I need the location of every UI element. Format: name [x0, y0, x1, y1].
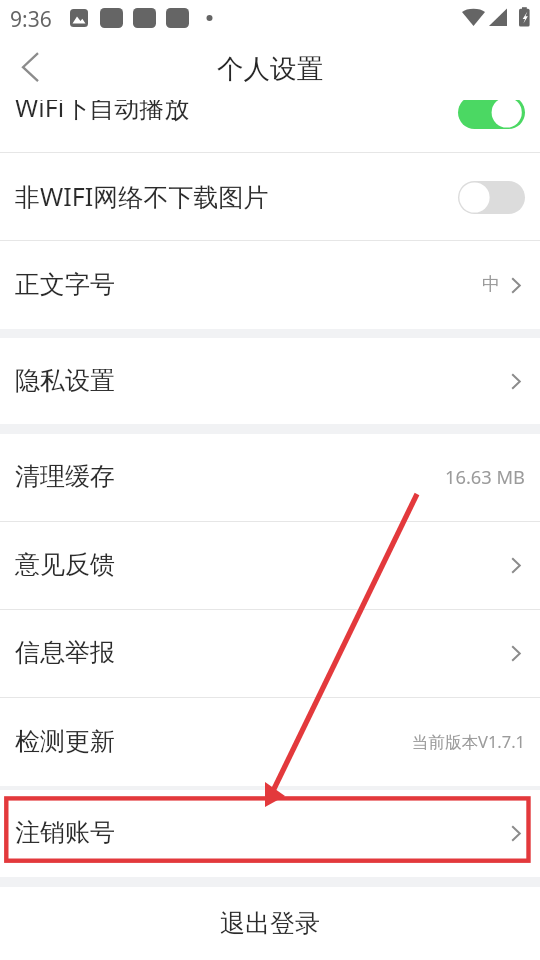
staticText: 信息举报: [15, 637, 115, 668]
button[interactable]: 非WIFI网络不下载图片: [0, 153, 540, 240]
staticText: 非WIFI网络不下载图片: [15, 179, 269, 213]
button[interactable]: 检测更新: [0, 698, 540, 786]
button[interactable]: 意见反馈: [0, 522, 540, 609]
staticText: 9:36: [10, 5, 52, 34]
staticText: 当前版本V1.7.1: [412, 730, 526, 753]
button[interactable]: 信息举报: [0, 610, 540, 697]
staticText: 注销账号: [15, 817, 115, 848]
button[interactable]: 清理缓存: [0, 434, 540, 521]
button[interactable]: Back: [0, 39, 58, 97]
button[interactable]: 正文字号: [0, 241, 540, 329]
staticText: 检测更新: [15, 726, 115, 757]
button[interactable]: 注销账号: [0, 790, 540, 877]
staticText: WiFi下自动播放: [15, 90, 190, 124]
button[interactable]: 退出登录: [212, 900, 328, 947]
staticText: 正文字号: [15, 269, 115, 300]
staticText: 意见反馈: [15, 549, 115, 580]
staticText: 中: [482, 273, 500, 296]
staticText: 隐私设置: [15, 365, 115, 396]
button[interactable]: 隐私设置: [0, 338, 540, 424]
staticText: 清理缓存: [15, 461, 115, 492]
staticText: 个人设置: [217, 52, 323, 85]
button[interactable]: WiFi下自动播放: [0, 64, 540, 152]
staticText: 16.63 MB: [445, 464, 526, 489]
staticText: 退出登录: [220, 908, 320, 939]
